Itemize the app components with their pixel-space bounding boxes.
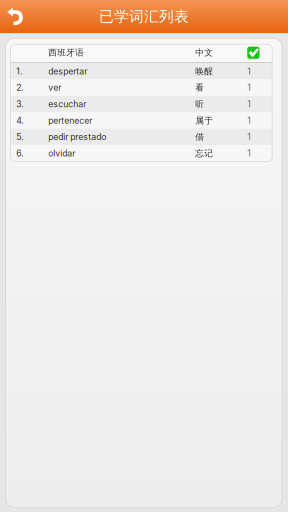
staticText: despertar xyxy=(48,66,87,77)
staticText: 已学词汇列表 xyxy=(99,7,189,26)
button[interactable]: Select all xyxy=(247,44,267,61)
button[interactable]: 2. xyxy=(10,79,272,96)
staticText: 1 xyxy=(247,148,251,159)
staticText: 忘记 xyxy=(195,148,213,159)
staticText: 唤醒 xyxy=(195,66,213,77)
staticText: 1 xyxy=(247,66,251,77)
staticText: pertenecer xyxy=(48,115,92,126)
button[interactable]: 4. xyxy=(10,112,272,129)
staticText: 看 xyxy=(195,82,204,93)
staticText: 1 xyxy=(247,82,251,93)
staticText: 听 xyxy=(195,99,204,109)
staticText: 2. xyxy=(16,82,23,93)
staticText: ver xyxy=(48,82,61,93)
staticText: escuchar xyxy=(48,99,86,109)
staticText: pedir prestado xyxy=(48,132,106,142)
staticText: olvidar xyxy=(48,148,75,159)
staticText: 1. xyxy=(16,66,22,77)
staticText: 3. xyxy=(16,99,23,109)
staticText: 属于 xyxy=(195,115,213,126)
staticText: 借 xyxy=(195,131,204,142)
button[interactable]: Back xyxy=(0,0,30,33)
staticText: 西班牙语 xyxy=(48,47,84,58)
staticText: 1 xyxy=(247,115,251,126)
button[interactable]: 3. xyxy=(10,96,272,112)
staticText: 1 xyxy=(247,99,251,109)
button[interactable]: 1. xyxy=(10,63,272,79)
staticText: 中文 xyxy=(195,47,213,58)
staticText: 6. xyxy=(16,148,23,159)
button[interactable]: 6. xyxy=(10,145,272,161)
staticText: 1 xyxy=(247,132,251,142)
button[interactable]: 5. xyxy=(10,129,272,145)
staticText: 5. xyxy=(16,132,23,142)
staticText: 4. xyxy=(16,115,23,126)
